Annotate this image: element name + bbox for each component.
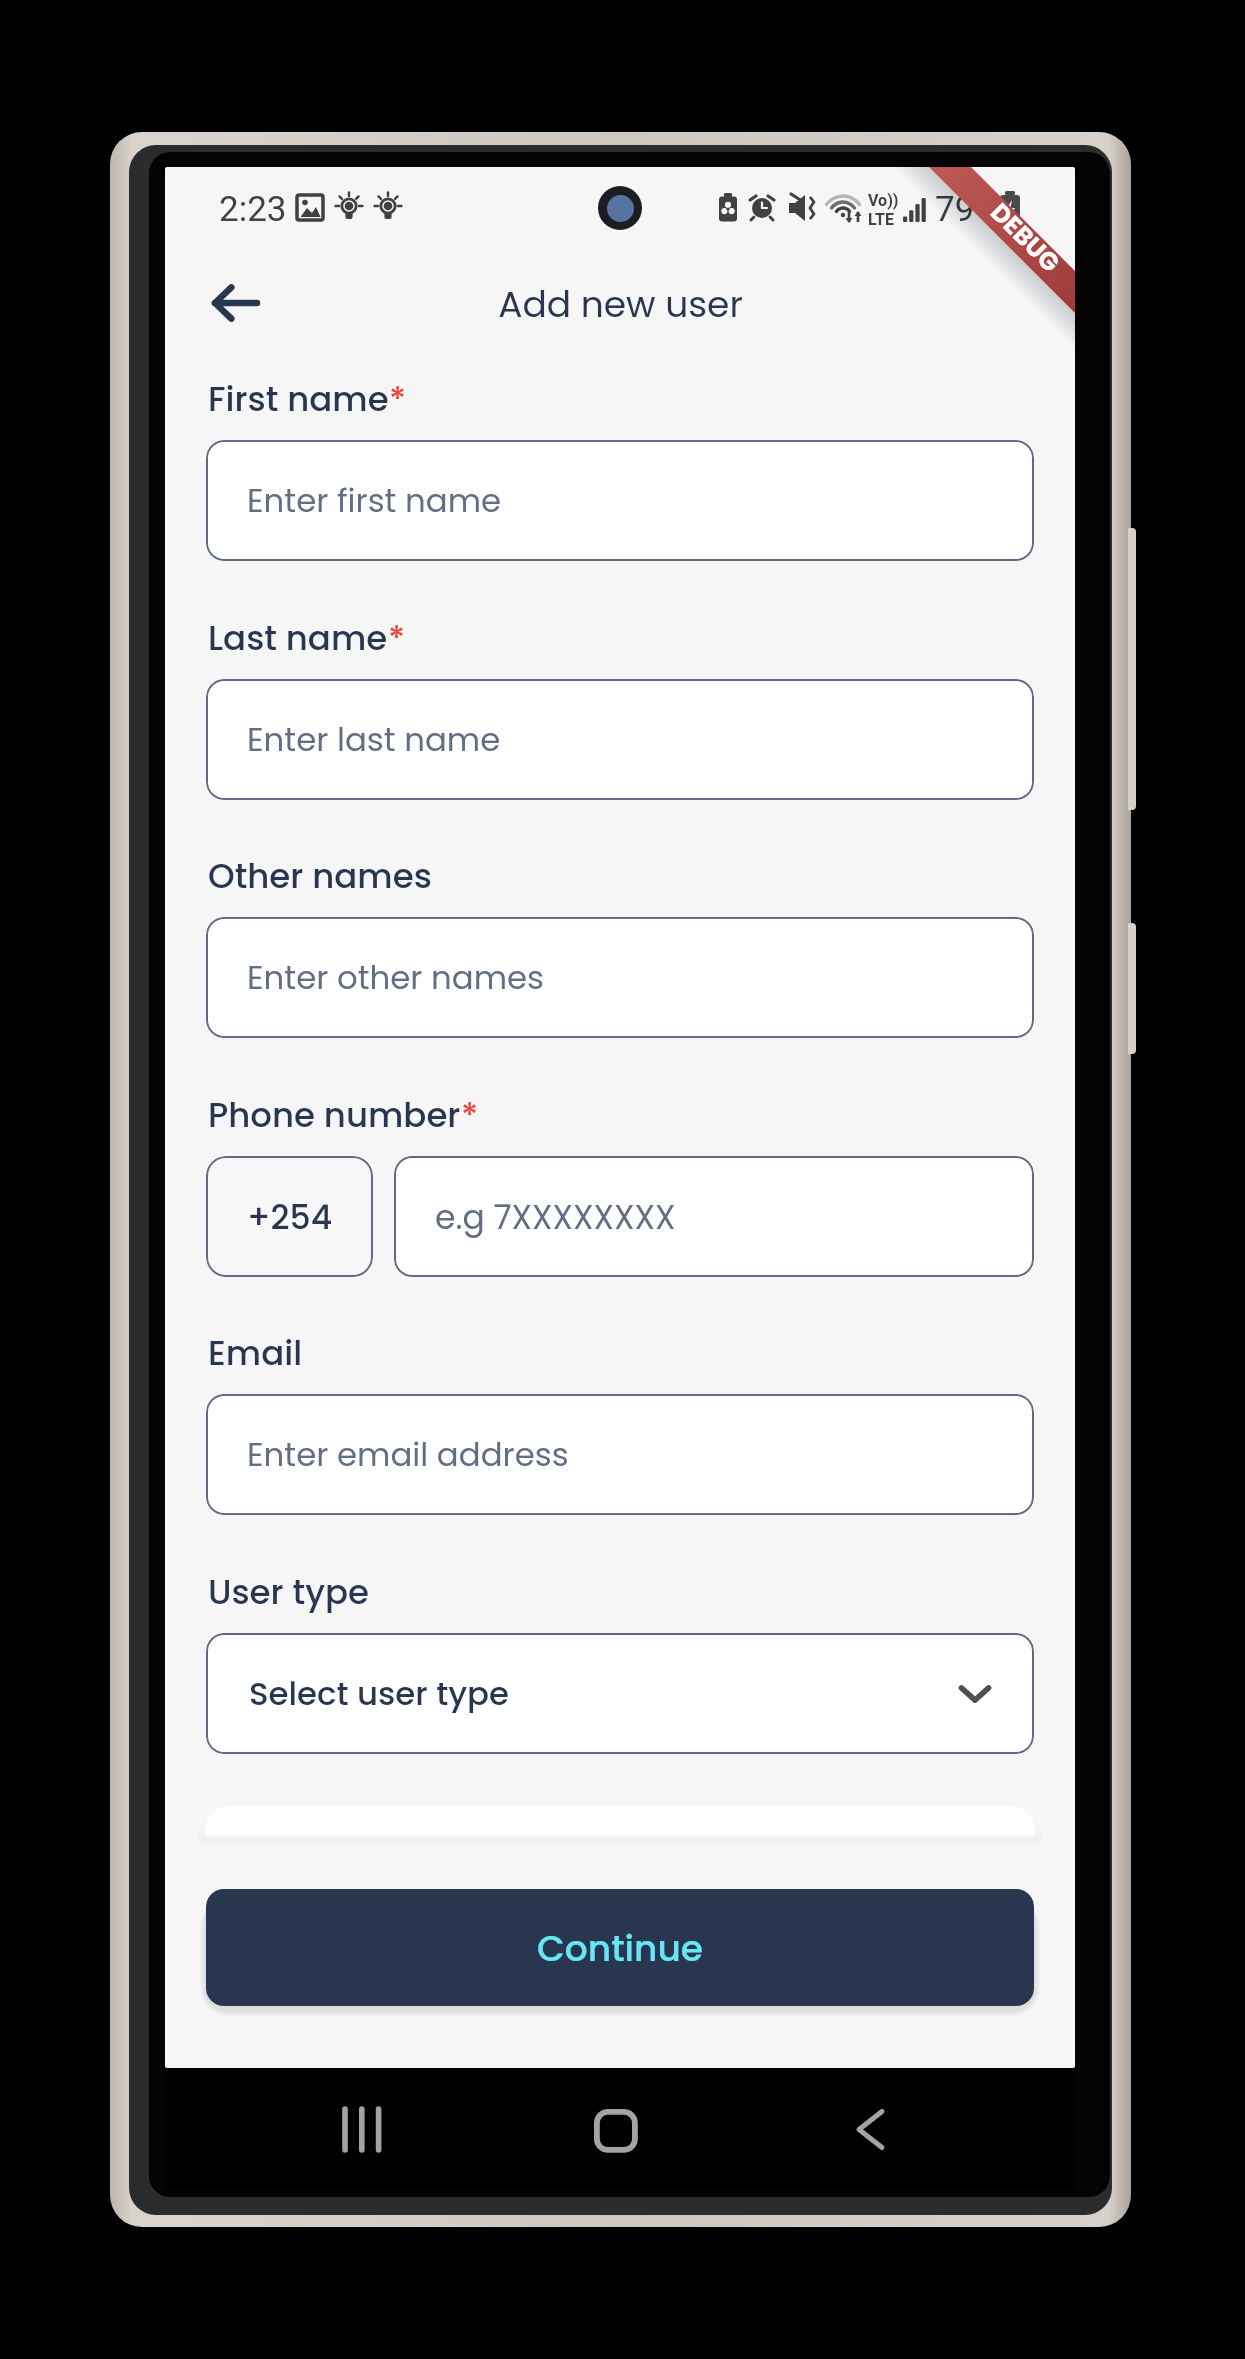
button[interactable]: Recents <box>314 2081 410 2177</box>
button[interactable]: Enter other names <box>206 917 1034 1038</box>
staticText: Add new user <box>498 279 743 329</box>
staticText: User type <box>208 1568 369 1616</box>
staticText: 79% <box>935 189 1000 230</box>
staticText: Enter last name <box>247 717 501 762</box>
staticText: e.g 7XXXXXXXX <box>435 1194 676 1240</box>
staticText: Phone number <box>208 1091 461 1139</box>
button[interactable]: Enter email address <box>206 1394 1034 1515</box>
staticText: Vo)) <box>868 191 899 210</box>
button[interactable]: Select user type <box>206 1633 1034 1754</box>
button[interactable]: Back <box>190 258 280 348</box>
staticText: Other names <box>208 852 432 900</box>
staticText: +254 <box>247 1194 333 1240</box>
staticText: LTE <box>868 210 894 229</box>
staticText: * <box>388 614 406 662</box>
button[interactable]: e.g 7XXXXXXXX <box>394 1156 1034 1277</box>
staticText: * <box>461 1091 479 1139</box>
button[interactable]: Enter last name <box>206 679 1034 800</box>
button[interactable]: Back <box>827 2081 923 2177</box>
staticText: Enter other names <box>247 955 544 1000</box>
staticText: First name <box>208 375 389 423</box>
button[interactable]: Continue <box>206 1889 1034 2006</box>
staticText: Select user type <box>249 1671 509 1716</box>
staticText: Email <box>208 1329 303 1377</box>
button[interactable]: Enter first name <box>206 440 1034 561</box>
staticText: DEBUG <box>983 195 1067 280</box>
staticText: Continue <box>537 1923 703 1973</box>
button[interactable]: Home <box>568 2081 664 2177</box>
staticText: Enter first name <box>247 478 502 523</box>
staticText: Last name <box>208 614 388 662</box>
button[interactable]: +254 <box>206 1156 373 1277</box>
staticText: * <box>389 375 407 423</box>
staticText: Enter email address <box>247 1432 569 1477</box>
staticText: 2:23 <box>219 189 287 230</box>
